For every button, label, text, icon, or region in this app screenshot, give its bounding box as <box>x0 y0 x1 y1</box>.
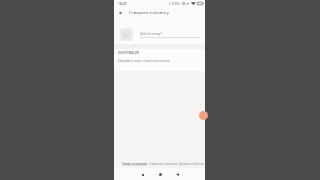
button[interactable]: Back <box>117 9 125 17</box>
staticText: Створити спільноту <box>129 10 169 15</box>
staticText: Дай їй назву* <box>140 31 163 36</box>
staticText: Умови та правила <box>122 162 148 166</box>
button[interactable]: Add community photo <box>120 28 133 41</box>
button[interactable]: Умови та правила <box>122 162 205 166</box>
staticText: Додайте опис своєї спільноти <box>118 58 170 63</box>
button[interactable]: Back <box>172 169 183 180</box>
button[interactable]: Recent apps <box>137 169 148 180</box>
button[interactable]: Create <box>199 111 208 120</box>
staticText: ІНФОРМАЦІЯ <box>118 51 139 55</box>
button[interactable]: Home <box>155 169 166 180</box>
staticText: створення спільноти. Дізнайтеся більше <box>149 162 205 166</box>
staticText: 18:47 <box>118 1 127 5</box>
staticText: 0,18 KB/s <box>169 2 181 6</box>
